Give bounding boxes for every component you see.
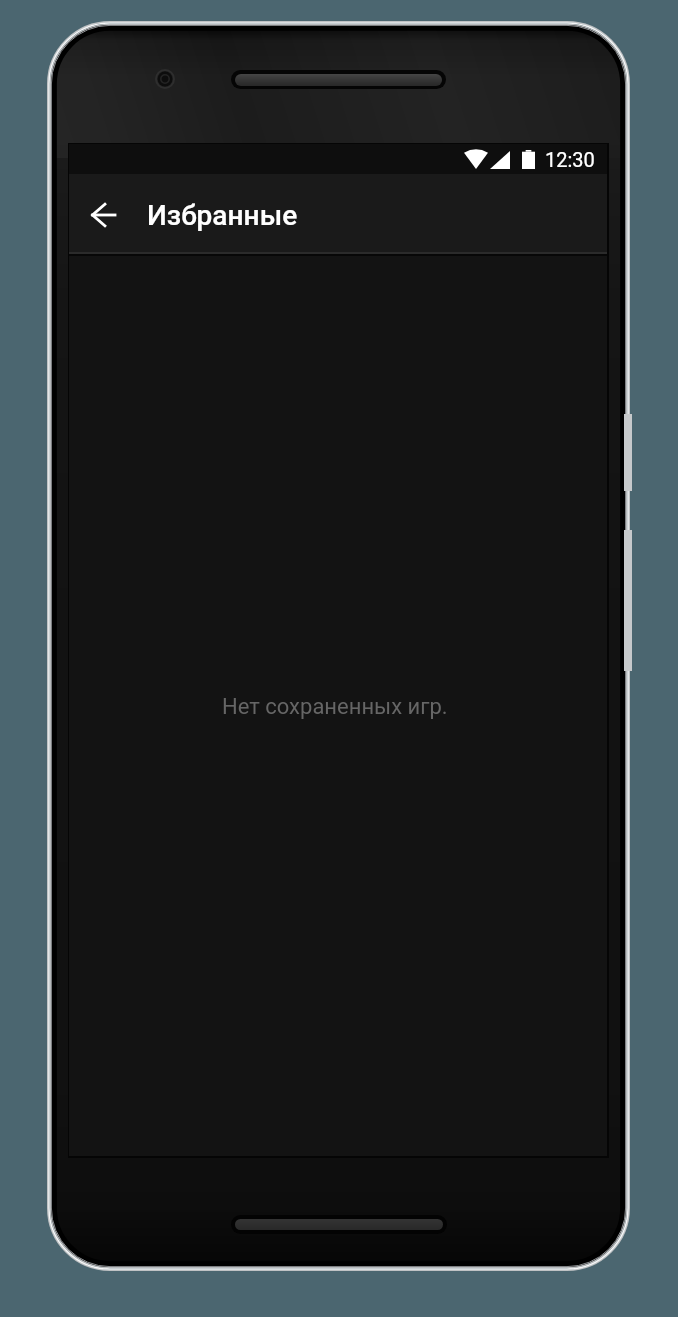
staticText: Избранные xyxy=(147,199,298,232)
staticText: Нет сохраненных игр. xyxy=(222,694,448,720)
button[interactable]: Back xyxy=(79,191,127,239)
staticText: 12:30 xyxy=(545,148,595,171)
